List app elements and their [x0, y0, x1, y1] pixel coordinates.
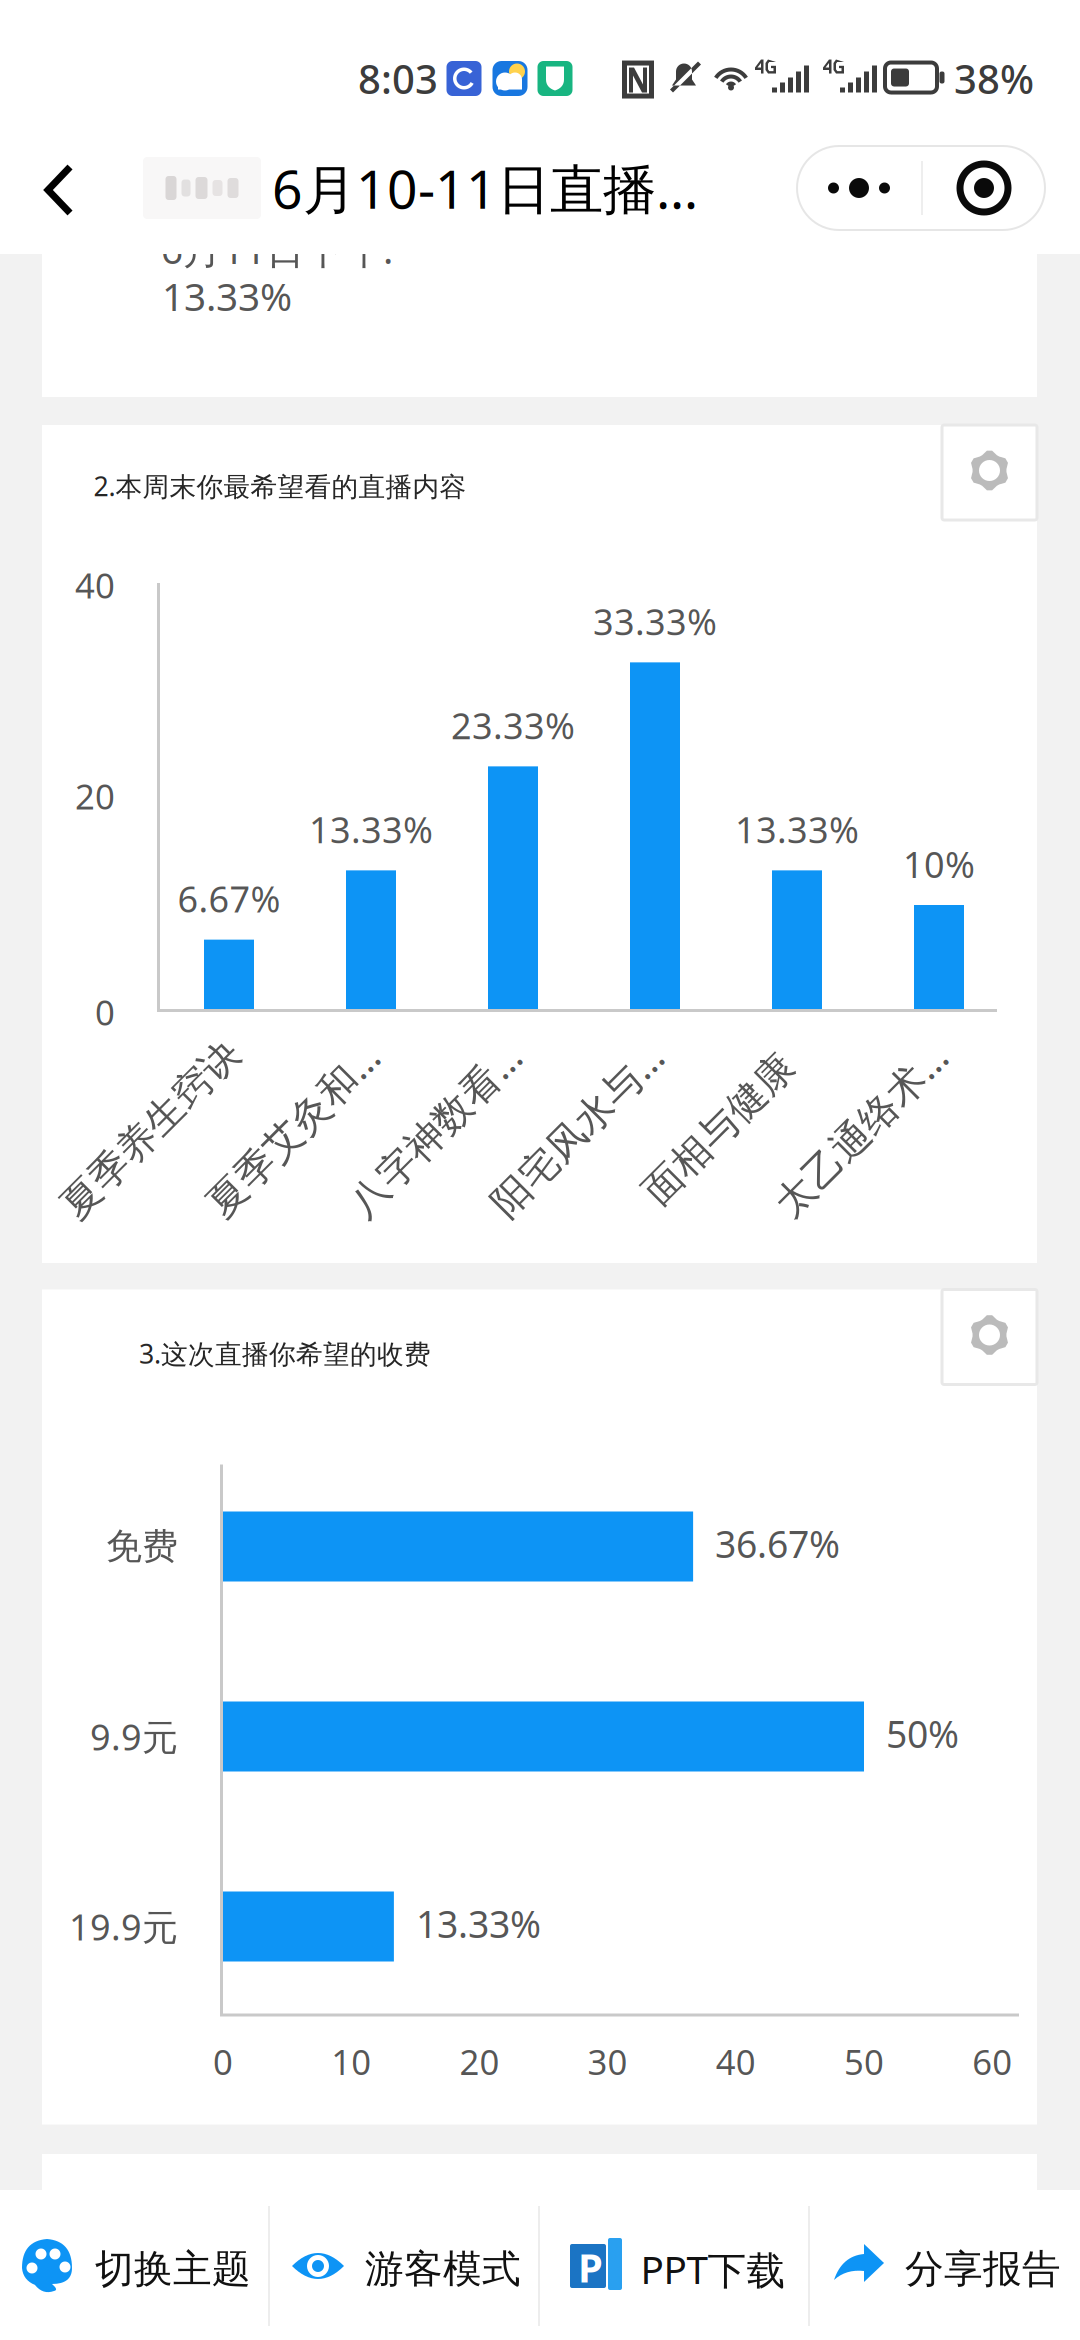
staticText: PPT下载 [640, 2243, 785, 2295]
staticText: 13.33% [309, 805, 433, 853]
staticText: 游客模式 [365, 2245, 521, 2293]
staticText: 20 [459, 2038, 499, 2084]
staticText: 50 [844, 2038, 884, 2084]
staticText: 夏季艾灸和… [180, 1103, 406, 1155]
staticText: 13.33% [416, 1899, 541, 1948]
staticText: 6月10-11日直播… [272, 153, 698, 223]
staticText: 10% [903, 840, 975, 888]
staticText: 38% [954, 52, 1034, 105]
staticText: 13.33% [735, 805, 859, 853]
staticText: 60 [972, 2038, 1012, 2084]
staticText: 33.33% [593, 597, 717, 645]
staticText: 6.67% [177, 875, 280, 922]
button[interactable]: P [540, 2190, 810, 2340]
button[interactable]: 分享报告 [810, 2190, 1080, 2340]
staticText: 40 [75, 562, 115, 608]
button[interactable]: Chart settings [942, 1289, 1037, 1384]
staticText: 9.9元 [90, 1713, 178, 1760]
staticText: 夏季养生窍诀 [34, 1105, 268, 1153]
staticText: 10 [331, 2038, 371, 2084]
button[interactable]: More options [797, 146, 1045, 230]
staticText: 切换主题 [95, 2245, 251, 2293]
staticText: 6月11日下午: [161, 223, 393, 275]
staticText: 30 [588, 2038, 628, 2084]
staticText: 36.67% [715, 1519, 840, 1568]
staticText: 20 [75, 773, 115, 819]
staticText: 阳宅风水与… [464, 1103, 690, 1155]
staticText: 分享报告 [905, 2245, 1061, 2293]
button[interactable]: Chart settings [942, 425, 1037, 520]
staticText: P [578, 2240, 603, 2293]
staticText: 2.本周末你最希望看的直播内容 [93, 468, 466, 504]
staticText: 太乙通络术… [748, 1103, 974, 1155]
staticText: 八字神数看… [322, 1103, 548, 1155]
staticText: 50% [886, 1709, 959, 1758]
staticText: 23.33% [451, 701, 575, 749]
staticText: 面相与健康 [621, 1105, 816, 1153]
button[interactable]: 游客模式 [270, 2190, 540, 2340]
staticText: 19.9元 [69, 1903, 178, 1950]
staticText: 40 [716, 2038, 756, 2084]
button[interactable]: Back [14, 133, 106, 247]
staticText: 0 [95, 989, 115, 1035]
staticText: 13.33% [162, 270, 292, 322]
staticText: 0 [213, 2038, 233, 2084]
staticText: 3.这次直播你希望的收费 [139, 1336, 431, 1371]
staticText: 免费 [106, 1524, 178, 1569]
button[interactable]: 切换主题 [0, 2190, 270, 2340]
staticText: 8:03 [358, 52, 438, 105]
